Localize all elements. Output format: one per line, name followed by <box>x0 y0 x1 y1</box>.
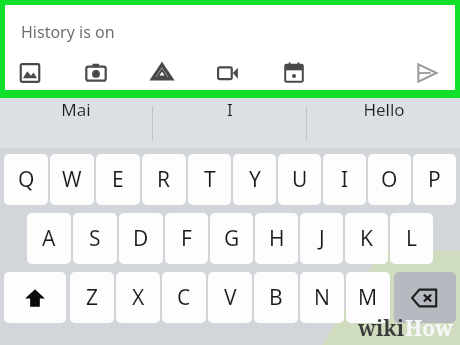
button[interactable]: R <box>142 154 186 205</box>
staticText: V <box>224 283 237 312</box>
button[interactable]: X <box>116 272 160 323</box>
button[interactable]: B <box>254 272 298 323</box>
staticText: Hello <box>363 98 405 121</box>
button[interactable]: Z <box>70 272 114 323</box>
staticText: Z <box>86 283 99 312</box>
button[interactable]: D <box>119 213 163 264</box>
button[interactable]: V <box>208 272 252 323</box>
staticText: X <box>132 283 145 312</box>
staticText: Y <box>249 165 261 194</box>
staticText: C <box>177 283 191 312</box>
staticText: Q <box>18 165 35 194</box>
button[interactable]: A <box>27 213 71 264</box>
button[interactable]: U <box>278 154 321 205</box>
button[interactable]: C <box>162 272 206 323</box>
button[interactable]: Hello <box>307 98 460 121</box>
button[interactable]: M <box>346 272 390 323</box>
staticText: I <box>341 165 349 194</box>
staticText: History is on <box>21 21 115 43</box>
staticText: S <box>89 224 101 253</box>
staticText: N <box>314 283 330 312</box>
button[interactable]: Calendar <box>277 56 311 90</box>
staticText: H <box>269 224 285 253</box>
button[interactable]: I <box>153 98 306 121</box>
staticText: R <box>157 165 171 194</box>
button[interactable]: History is on <box>5 19 455 45</box>
button[interactable]: Record video <box>211 56 245 90</box>
staticText: D <box>133 224 149 253</box>
button[interactable]: T <box>188 154 231 205</box>
button[interactable]: Shift <box>4 272 66 323</box>
staticText: A <box>42 224 56 253</box>
button[interactable]: P <box>413 154 456 205</box>
button[interactable]: L <box>390 213 433 264</box>
button[interactable]: F <box>165 213 208 264</box>
staticText: J <box>319 224 325 253</box>
button[interactable]: Take photo <box>79 56 113 90</box>
staticText: B <box>269 283 283 312</box>
button[interactable]: K <box>345 213 388 264</box>
staticText: I <box>227 98 233 121</box>
button[interactable]: Backspace <box>394 272 456 323</box>
staticText: O <box>381 165 398 194</box>
staticText: P <box>428 165 441 194</box>
button[interactable]: Y <box>233 154 276 205</box>
staticText: E <box>112 165 124 194</box>
button[interactable]: W <box>50 154 94 205</box>
staticText: G <box>224 224 240 253</box>
button[interactable]: E <box>96 154 140 205</box>
button[interactable]: H <box>255 213 298 264</box>
staticText: F <box>181 224 192 253</box>
button[interactable]: N <box>300 272 344 323</box>
staticText: W <box>62 165 82 194</box>
button[interactable]: Drive <box>145 56 179 90</box>
button[interactable]: Send <box>409 55 449 90</box>
button[interactable]: Insert image <box>13 56 47 90</box>
staticText: Mai <box>61 98 91 121</box>
button[interactable]: J <box>300 213 343 264</box>
button[interactable]: G <box>210 213 253 264</box>
staticText: L <box>406 224 418 253</box>
staticText: M <box>358 283 378 312</box>
staticText: How <box>405 314 454 343</box>
button[interactable]: Q <box>4 154 48 205</box>
staticText: T <box>204 165 216 194</box>
button[interactable]: O <box>368 154 411 205</box>
staticText: K <box>360 224 373 253</box>
staticText: U <box>292 165 308 194</box>
button[interactable]: I <box>323 154 366 205</box>
button[interactable]: S <box>73 213 117 264</box>
staticText: wiki <box>358 314 405 343</box>
button[interactable]: Mai <box>0 98 152 121</box>
